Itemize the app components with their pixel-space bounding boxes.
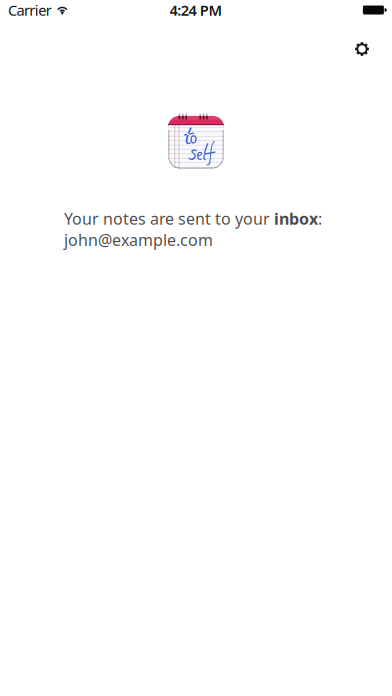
- staticText: Carrier: [8, 0, 52, 20]
- button[interactable]: Settings: [341, 20, 392, 62]
- staticText: 4:24 PM: [169, 0, 222, 20]
- staticText: Your notes are sent to your inbox: john@…: [64, 208, 322, 250]
